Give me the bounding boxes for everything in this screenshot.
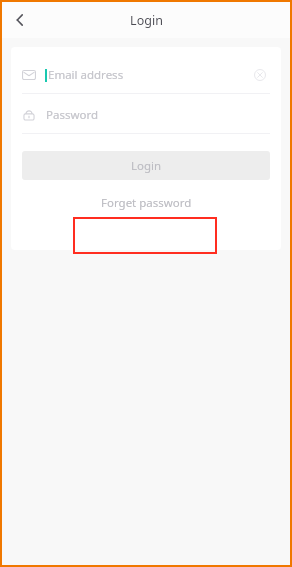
button[interactable]: Login	[22, 151, 270, 180]
staticText: Login	[130, 12, 163, 29]
button[interactable]: Password	[22, 97, 270, 133]
button[interactable]: Clear	[250, 65, 270, 85]
button[interactable]: Forget password	[22, 188, 270, 217]
staticText: Login	[131, 158, 162, 174]
staticText: Password	[46, 107, 270, 123]
button[interactable]: Back	[2, 2, 38, 38]
staticText: Email address	[48, 67, 250, 83]
button[interactable]: Email address	[22, 57, 270, 93]
staticText: Forget password	[101, 195, 192, 211]
